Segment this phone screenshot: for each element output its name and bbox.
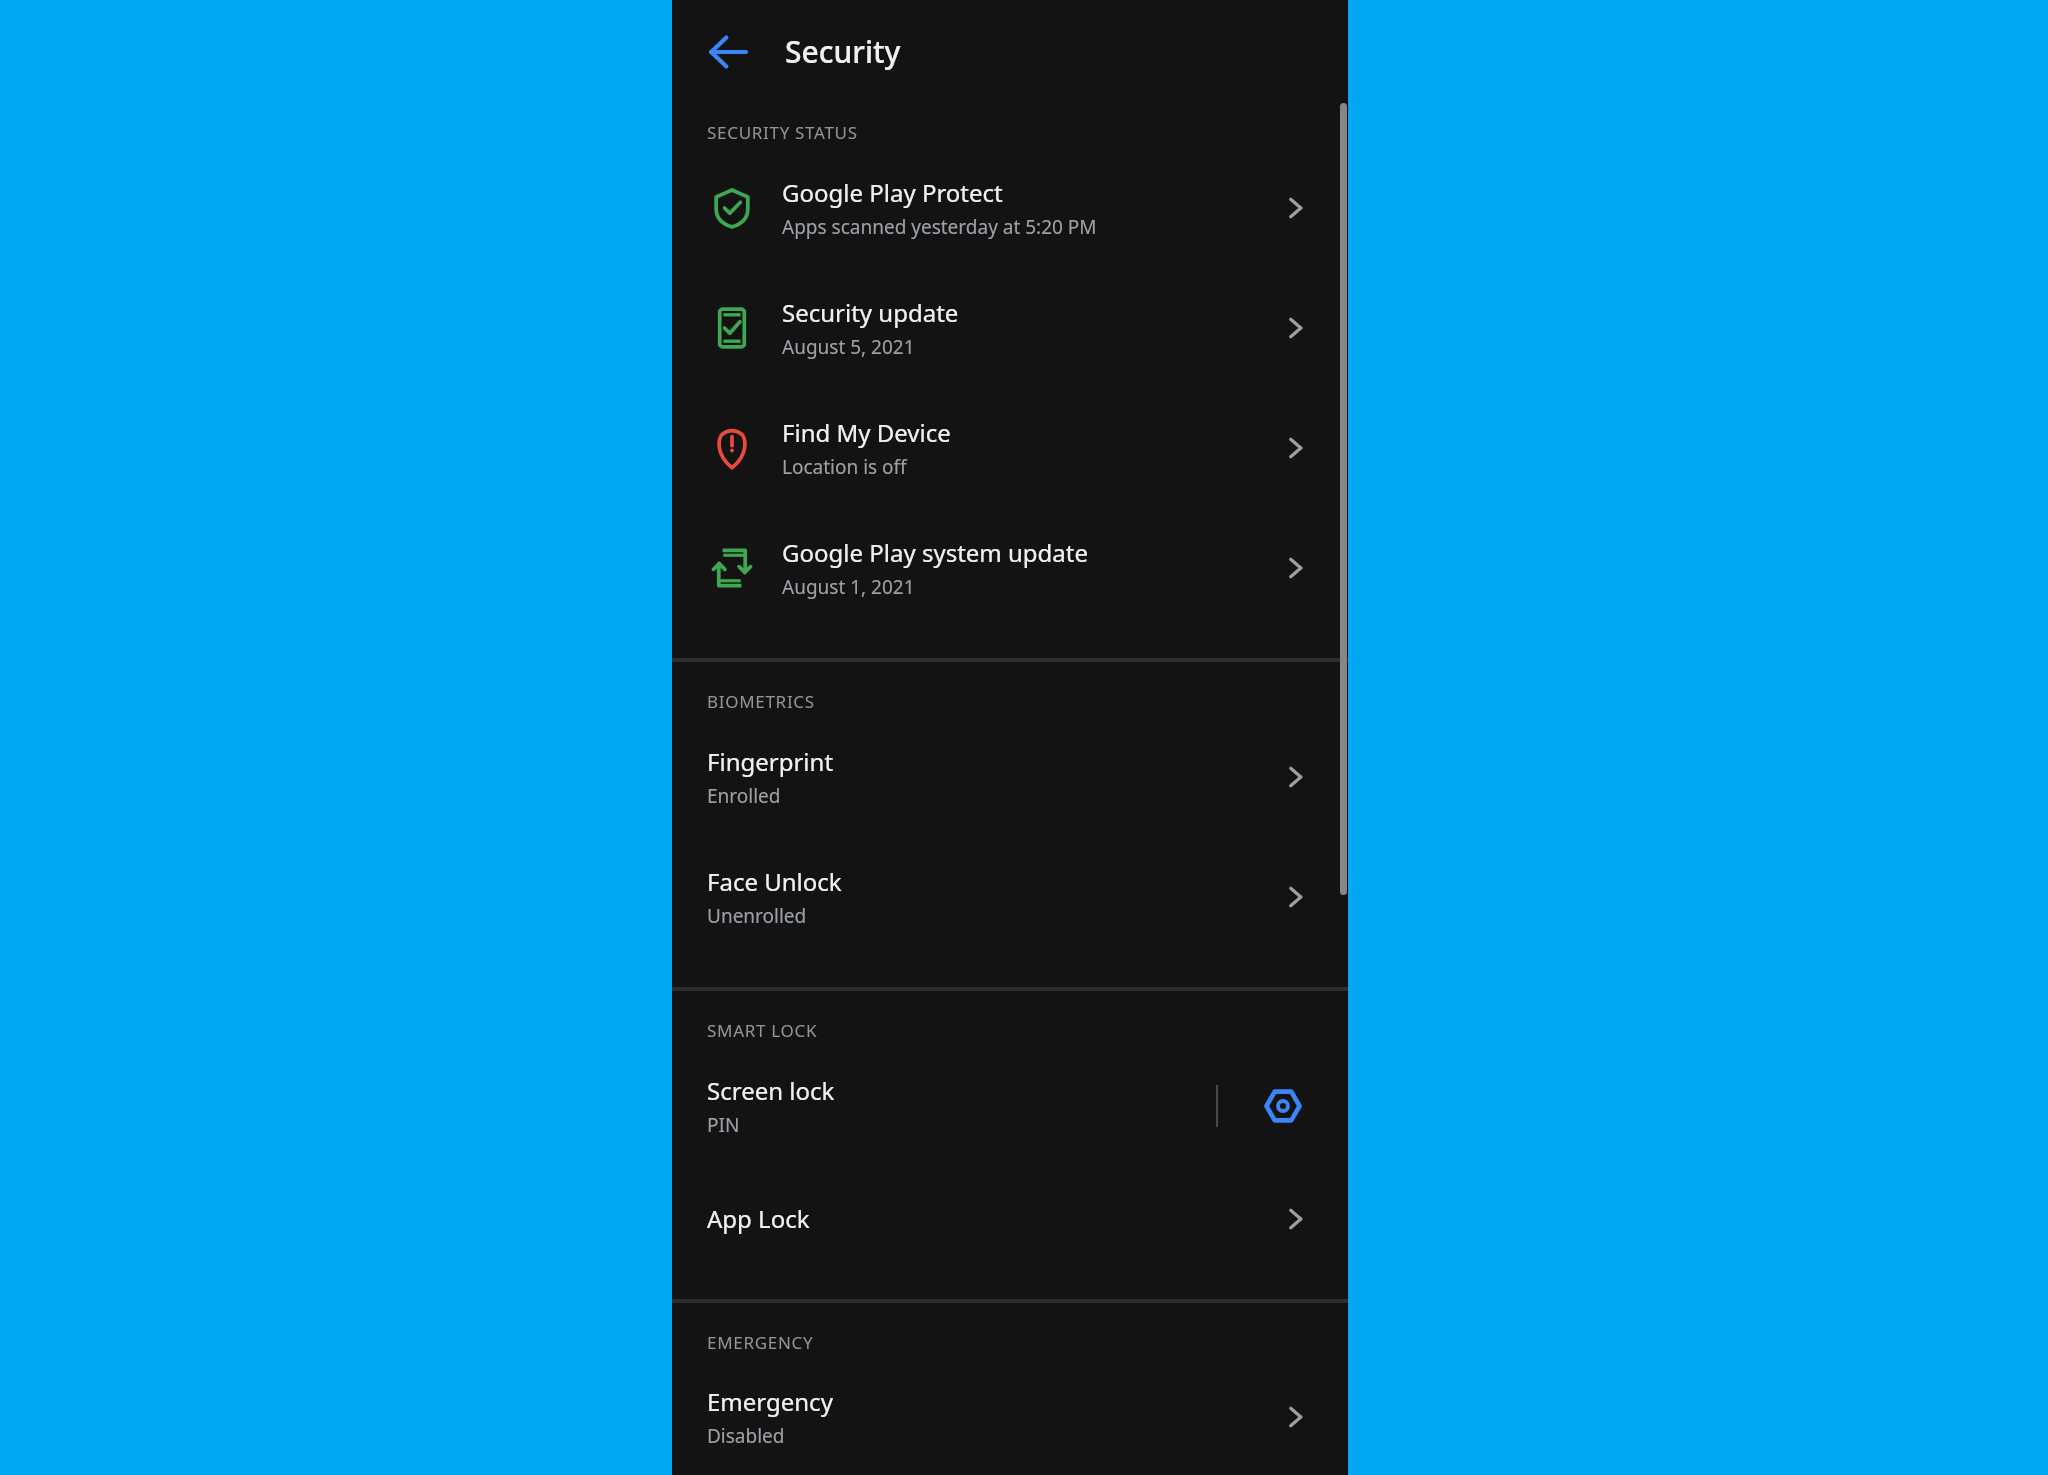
staticText: Screen lock: [707, 1074, 835, 1107]
button[interactable]: Find My Device: [672, 388, 1348, 508]
button[interactable]: Screen lock: [672, 1046, 1216, 1166]
button[interactable]: Emergency: [672, 1358, 1348, 1475]
staticText: Unenrolled: [707, 903, 807, 929]
staticText: Apps scanned yesterday at 5:20 PM: [782, 214, 1097, 240]
staticText: SMART LOCK: [707, 1019, 818, 1042]
staticText: August 1, 2021: [782, 574, 915, 600]
button[interactable]: Google Play Protect: [672, 148, 1348, 268]
staticText: Disabled: [707, 1423, 785, 1449]
button[interactable]: Face Unlock: [672, 837, 1348, 957]
staticText: App Lock: [707, 1202, 810, 1235]
button[interactable]: Back: [692, 16, 764, 88]
staticText: Emergency: [707, 1385, 833, 1418]
staticText: Face Unlock: [707, 865, 842, 898]
staticText: Security update: [782, 296, 959, 329]
button[interactable]: Screen lock settings: [1218, 1046, 1348, 1166]
staticText: PIN: [707, 1112, 740, 1138]
staticText: Enrolled: [707, 783, 781, 809]
button[interactable]: Fingerprint: [672, 717, 1348, 837]
staticText: Fingerprint: [707, 745, 834, 778]
staticText: BIOMETRICS: [707, 690, 815, 713]
button[interactable]: App Lock: [672, 1166, 1348, 1271]
staticText: August 5, 2021: [782, 334, 915, 360]
staticText: SECURITY STATUS: [707, 121, 858, 144]
staticText: Security: [785, 31, 901, 72]
button[interactable]: Security update: [672, 268, 1348, 388]
button[interactable]: Google Play system update: [672, 508, 1348, 628]
staticText: Find My Device: [782, 416, 951, 449]
staticText: Google Play system update: [782, 536, 1089, 569]
staticText: Google Play Protect: [782, 176, 1003, 209]
staticText: EMERGENCY: [707, 1331, 814, 1354]
staticText: Location is off: [782, 454, 907, 480]
